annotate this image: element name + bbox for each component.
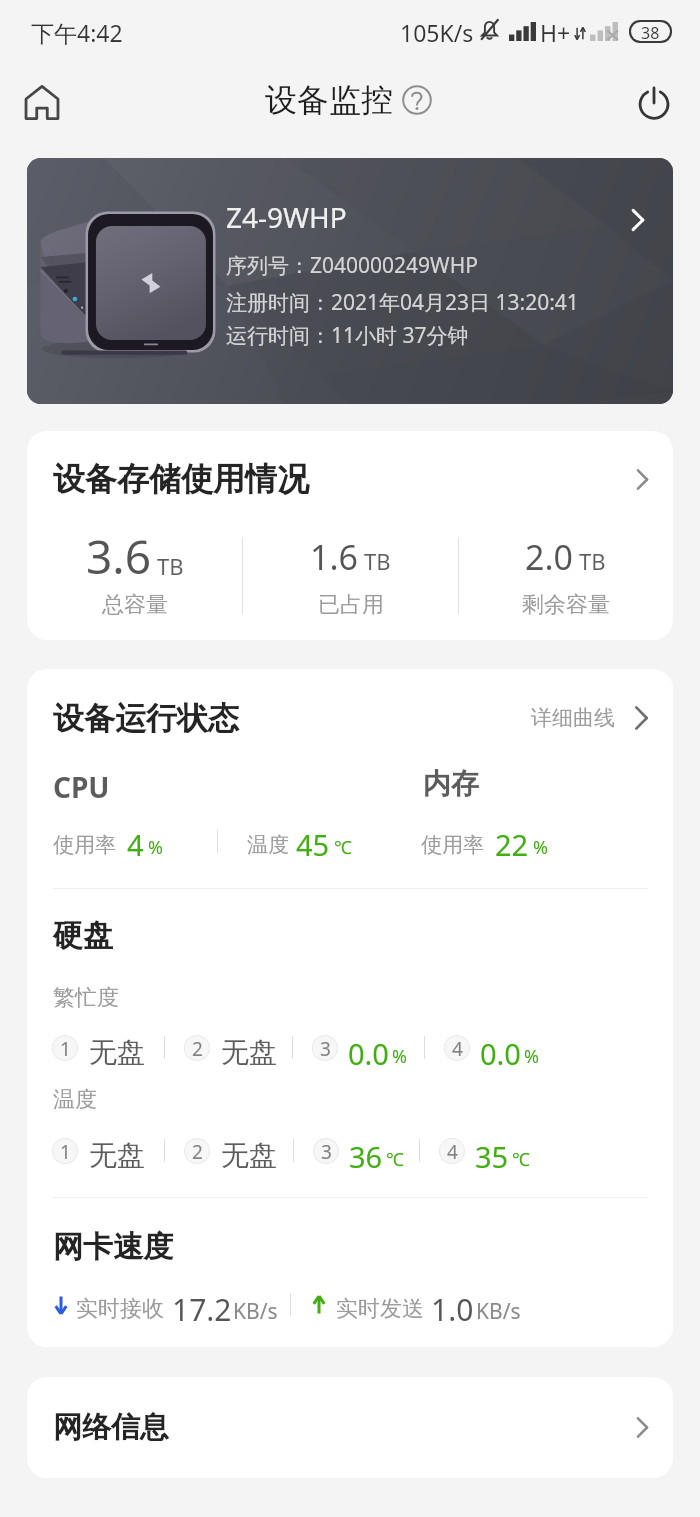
staticText: 网络信息: [53, 1409, 169, 1446]
staticText: 网卡速度: [53, 1228, 173, 1266]
staticText: 2: [192, 1139, 203, 1163]
button[interactable]: 设备运行状态: [27, 669, 673, 767]
staticText: 1: [60, 1139, 71, 1163]
staticText: 0.0: [348, 1034, 389, 1068]
staticText: 使用率: [53, 832, 116, 858]
staticText: 已占用: [318, 591, 384, 619]
staticText: 1.6: [310, 534, 359, 580]
staticText: Z4-9WHP: [226, 198, 347, 236]
staticText: 17.2: [172, 1289, 232, 1327]
staticText: 详细曲线: [531, 705, 615, 731]
staticText: 2.0: [525, 534, 574, 580]
staticText: %: [524, 1044, 539, 1069]
staticText: 设备存储使用情况: [53, 459, 309, 499]
staticText: 35: [475, 1137, 509, 1171]
button[interactable]: Home: [8, 70, 76, 134]
staticText: 内存: [423, 766, 479, 801]
staticText: 无盘: [89, 1035, 145, 1069]
staticText: 总容量: [102, 591, 168, 619]
staticText: KB/s: [233, 1297, 278, 1326]
button[interactable]: 设备监控: [265, 77, 432, 123]
staticText: 剩余容量: [522, 591, 610, 619]
staticText: 运行时间：11小时 37分钟: [226, 321, 469, 350]
staticText: ℃: [512, 1147, 530, 1172]
staticText: 1.0: [431, 1289, 474, 1327]
button[interactable]: Power: [620, 70, 688, 134]
staticText: 4: [452, 1036, 463, 1060]
staticText: 繁忙度: [53, 984, 119, 1012]
staticText: 4: [127, 825, 144, 861]
staticText: CPU: [53, 768, 110, 806]
staticText: 实时接收: [76, 1295, 164, 1323]
staticText: H+: [540, 17, 571, 48]
staticText: 0.0: [480, 1034, 521, 1068]
staticText: 硬盘: [53, 917, 113, 955]
staticText: 温度: [53, 1086, 97, 1114]
button[interactable]: 设备存储使用情况: [27, 431, 673, 527]
staticText: TB: [364, 546, 391, 576]
staticText: KB/s: [476, 1297, 521, 1326]
staticText: 36: [349, 1137, 383, 1171]
staticText: ℃: [386, 1147, 404, 1172]
staticText: TB: [157, 551, 184, 581]
button[interactable]: 网络信息: [27, 1377, 673, 1478]
staticText: %: [392, 1044, 407, 1069]
staticText: 无盘: [221, 1035, 277, 1069]
staticText: 105K/s: [400, 17, 474, 48]
staticText: %: [533, 835, 548, 860]
button[interactable]: Z4-9WHP: [27, 158, 673, 404]
staticText: 45: [296, 825, 330, 861]
staticText: ℃: [334, 835, 352, 860]
staticText: 1: [60, 1036, 71, 1060]
staticText: 注册时间：2021年04月23日 13:20:41: [226, 288, 579, 317]
staticText: 无盘: [89, 1138, 145, 1172]
staticText: %: [148, 835, 163, 860]
staticText: 38: [641, 22, 660, 41]
staticText: 温度: [247, 832, 289, 858]
staticText: 无盘: [221, 1138, 277, 1172]
staticText: TB: [579, 546, 606, 576]
staticText: 4: [447, 1139, 458, 1163]
staticText: 实时发送: [336, 1295, 424, 1323]
staticText: 下午4:42: [31, 17, 123, 48]
staticText: 设备运行状态: [53, 699, 239, 738]
staticText: 使用率: [421, 832, 484, 858]
staticText: 22: [495, 825, 529, 861]
staticText: 2: [192, 1036, 203, 1060]
staticText: 序列号：Z040000249WHP: [226, 251, 478, 280]
staticText: 3: [320, 1036, 331, 1060]
staticText: 3: [321, 1139, 332, 1163]
staticText: 设备监控: [265, 80, 393, 120]
staticText: 3.6: [86, 525, 151, 588]
